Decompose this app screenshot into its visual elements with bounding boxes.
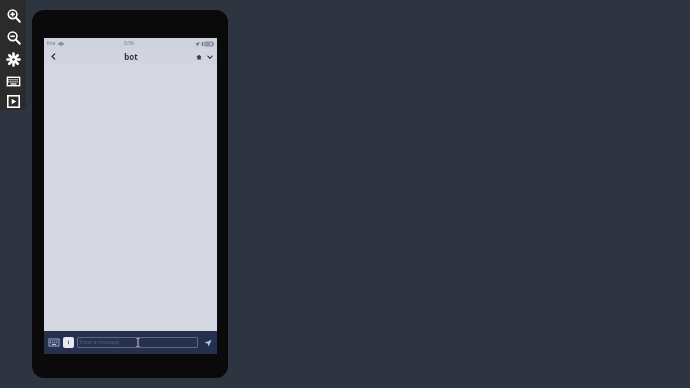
button[interactable]: Home — [194, 52, 204, 62]
button[interactable]: Zoom in — [2, 4, 24, 26]
button[interactable]: Keyboard — [2, 70, 24, 92]
button[interactable]: More options — [205, 52, 215, 62]
staticText: line — [47, 40, 56, 47]
staticText: 0:56 — [124, 40, 134, 47]
staticText: bot — [124, 51, 138, 62]
button[interactable]: Zoom out — [2, 26, 24, 48]
button[interactable]: Settings — [2, 48, 24, 70]
button[interactable]: Back — [46, 49, 60, 64]
button[interactable]: Stickers — [63, 337, 74, 348]
button[interactable]: Enter a message — [77, 337, 198, 348]
button[interactable]: Play — [2, 92, 24, 110]
button[interactable]: Keyboard — [47, 336, 60, 349]
staticText: Enter a message — [80, 339, 119, 346]
button[interactable]: Send — [201, 336, 214, 349]
